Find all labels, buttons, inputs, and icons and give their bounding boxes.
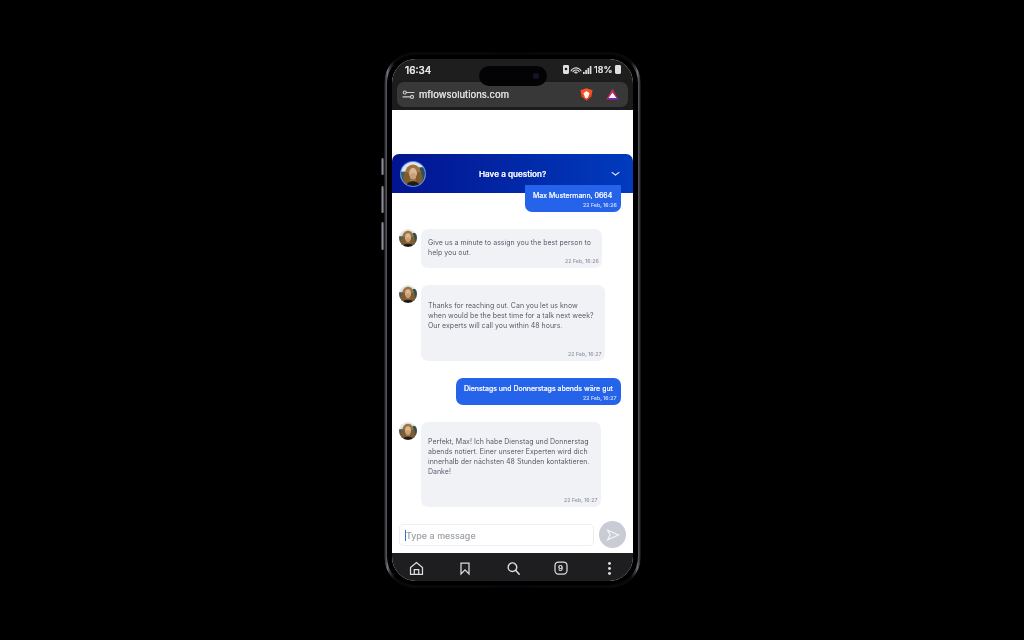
staticText: 18% [594,64,613,75]
staticText: 22 Feb, 16:27 [568,350,602,357]
button[interactable]: Bookmarks [441,553,489,581]
staticText: Have a question? [479,169,547,179]
staticText: 16:34 [405,64,432,76]
other: Collapse chat [611,169,620,178]
button[interactable]: Tabs [537,553,585,581]
other: BAT rewards [606,88,619,101]
button[interactable]: More options [585,553,633,581]
staticText: 22 Feb, 16:26 [565,257,599,264]
staticText: 22 Feb, 16:27 [583,394,617,401]
staticText: Type a message [406,530,476,541]
button[interactable]: Dienstags und Donnerstags abends wäre gu… [456,378,621,405]
staticText: 9 [558,563,564,573]
staticText: 22 Feb, 16:26 [583,201,617,208]
button[interactable]: Send message [599,521,626,548]
button[interactable]: Home [392,553,441,581]
staticText: Dienstags und Donnerstags abends wäre gu… [464,383,613,393]
button[interactable]: Type a message [399,524,594,546]
button[interactable]: Max Mustermann, 0664 [525,185,621,212]
other: Brave shields [580,88,593,101]
staticText: Max Mustermann, 0664 [533,190,613,200]
staticText: mflowsolutions.com [419,89,509,100]
staticText: Give us a minute to assign you the best … [428,237,591,257]
staticText: 22 Feb, 16:27 [564,496,598,503]
other: Site settings [403,89,414,100]
staticText: Thanks for reaching out. Can you let us … [428,300,594,330]
staticText: Perfekt, Max! Ich habe Dienstag und Donn… [428,436,590,476]
button[interactable]: Search [489,553,537,581]
button[interactable]: Give us a minute to assign you the best … [421,229,602,268]
button[interactable]: Have a question? [392,154,633,193]
button[interactable]: Perfekt, Max! Ich habe Dienstag und Donn… [421,422,601,507]
button[interactable]: Thanks for reaching out. Can you let us … [421,285,605,361]
button[interactable]: Site settings [397,82,628,107]
